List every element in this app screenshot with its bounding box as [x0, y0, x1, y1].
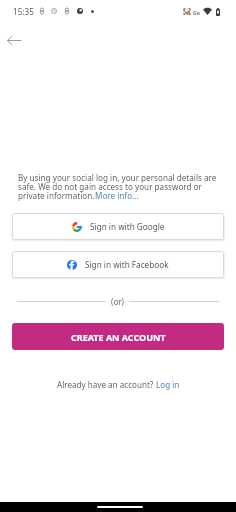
- button[interactable]: Sign in with Google: [12, 213, 224, 240]
- staticText: 15:35: [13, 6, 34, 17]
- button[interactable]: Back: [0, 18, 36, 62]
- staticText: CREATE AN ACCOUNT: [71, 331, 166, 343]
- button[interactable]: More info...: [95, 190, 139, 201]
- staticText: Sign in with Facebook: [85, 259, 169, 270]
- staticText: (or): [111, 296, 124, 307]
- staticText: By using your social log in, your person…: [18, 172, 217, 192]
- staticText: Go: [193, 9, 200, 16]
- button[interactable]: CREATE AN ACCOUNT: [12, 323, 224, 350]
- staticText: Already have an account?: [57, 379, 156, 390]
- button[interactable]: Log in: [156, 379, 180, 390]
- staticText: private information.: [18, 190, 95, 201]
- staticText: Sign in with Google: [90, 221, 165, 232]
- button[interactable]: Sign in with Facebook: [12, 251, 224, 278]
